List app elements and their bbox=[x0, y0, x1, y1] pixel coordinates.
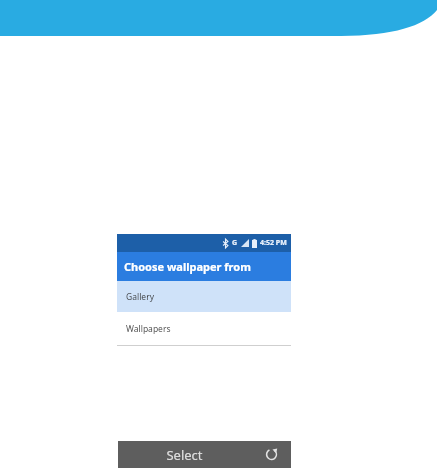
staticText: Select bbox=[118, 446, 251, 464]
button[interactable]: Rotate bbox=[251, 441, 291, 468]
staticText: Gallery bbox=[126, 291, 154, 303]
staticText: Choose wallpaper from bbox=[124, 259, 251, 274]
staticText: G bbox=[232, 238, 238, 248]
button[interactable]: Choose wallpaper from bbox=[117, 252, 291, 281]
staticText: 4:52 PM bbox=[260, 238, 287, 248]
button[interactable]: Select bbox=[118, 441, 291, 468]
staticText: Wallpapers bbox=[126, 323, 171, 335]
button[interactable]: Gallery bbox=[117, 281, 291, 312]
button[interactable]: Wallpapers bbox=[117, 312, 291, 345]
